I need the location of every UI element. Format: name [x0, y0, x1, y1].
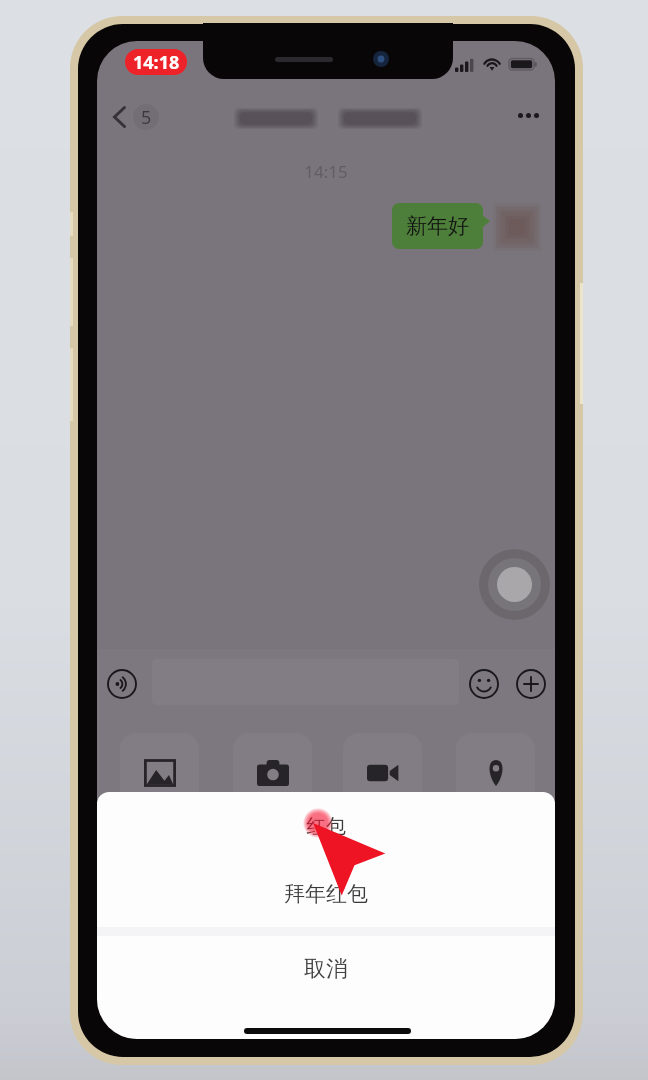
button[interactable]: 取消 [97, 936, 555, 1024]
button[interactable]: Back [107, 101, 167, 133]
button[interactable]: Voice input [107, 669, 137, 699]
staticText: 红包 [306, 814, 346, 839]
button[interactable]: Record [479, 549, 550, 620]
button[interactable]: More options [506, 103, 551, 128]
button[interactable]: 红包 [97, 792, 555, 927]
button[interactable]: More [516, 669, 546, 699]
staticText: 取消 [304, 955, 348, 983]
staticText: 拜年红包 [284, 881, 368, 907]
staticText: 5 [141, 105, 152, 130]
button[interactable]: Photo [120, 733, 199, 812]
staticText: 14:18 [133, 50, 180, 75]
button[interactable]: Emoji [469, 669, 499, 699]
staticText: 新年好 [406, 213, 469, 239]
button[interactable]: Camera [233, 733, 312, 812]
button[interactable]: Video [343, 733, 422, 812]
button[interactable]: Location [456, 733, 535, 812]
